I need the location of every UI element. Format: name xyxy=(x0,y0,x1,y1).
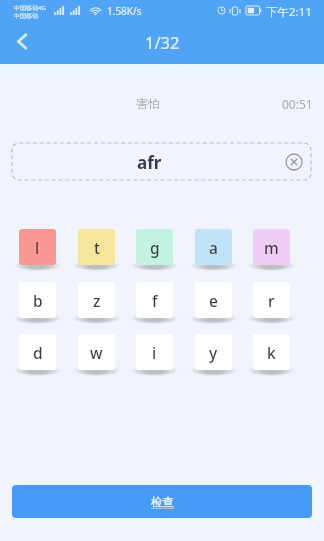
button[interactable]: Clear text xyxy=(283,151,305,173)
staticText: w xyxy=(90,342,103,363)
staticText: a xyxy=(209,237,218,258)
button[interactable]: g xyxy=(136,229,173,265)
button[interactable]: w xyxy=(78,334,115,370)
staticText: e xyxy=(209,290,218,311)
button[interactable]: z xyxy=(78,282,115,318)
staticText: 下午2:11 xyxy=(266,4,312,20)
staticText: y xyxy=(209,342,218,363)
button[interactable]: e xyxy=(195,282,232,318)
button[interactable]: k xyxy=(253,334,290,370)
staticText: t xyxy=(94,237,100,258)
button[interactable]: m xyxy=(253,229,290,265)
button[interactable]: b xyxy=(19,282,56,318)
staticText: g xyxy=(150,237,160,258)
staticText: d xyxy=(33,342,43,363)
button[interactable]: y xyxy=(195,334,232,370)
staticText: b xyxy=(33,290,43,311)
button[interactable]: i xyxy=(136,334,173,370)
staticText: 害怕 xyxy=(136,96,160,111)
button[interactable]: d xyxy=(19,334,56,370)
button[interactable]: f xyxy=(136,282,173,318)
button[interactable]: Back xyxy=(6,25,38,57)
button[interactable]: r xyxy=(253,282,290,318)
staticText: z xyxy=(93,290,101,311)
staticText: 检查 xyxy=(151,495,174,509)
staticText: i xyxy=(152,342,157,363)
button[interactable]: a xyxy=(195,229,232,265)
staticText: 中国移动4G xyxy=(14,4,46,12)
staticText: afr xyxy=(137,151,162,174)
staticText: m xyxy=(264,237,279,258)
staticText: 中国移动 xyxy=(14,12,38,20)
staticText: f xyxy=(152,290,158,311)
button[interactable]: l xyxy=(19,229,56,265)
staticText: 00:51 xyxy=(282,96,313,112)
button[interactable]: t xyxy=(78,229,115,265)
button[interactable]: 检查 xyxy=(12,485,312,518)
staticText: 1/32 xyxy=(145,31,180,53)
staticText: l xyxy=(35,237,40,258)
staticText: r xyxy=(268,290,275,311)
staticText: k xyxy=(267,342,276,363)
staticText: 1.58K/s xyxy=(107,4,142,18)
